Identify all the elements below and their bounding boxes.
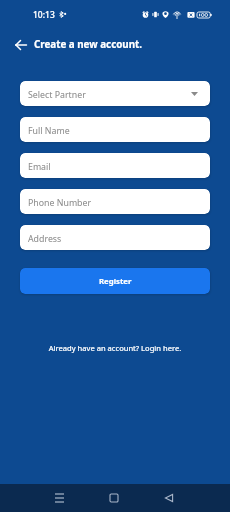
staticText: Select Partner bbox=[28, 89, 86, 101]
button[interactable]: Already have an account? Login here. bbox=[45, 341, 185, 354]
button[interactable]: Home bbox=[102, 486, 126, 510]
staticText: Register bbox=[99, 276, 132, 287]
button[interactable]: Email bbox=[20, 153, 210, 178]
staticText: Create a new account. bbox=[34, 38, 143, 51]
button[interactable]: Select Partner bbox=[20, 81, 210, 106]
staticText: Already have an account? Login here. bbox=[45, 343, 185, 353]
button[interactable]: Recent apps bbox=[47, 486, 71, 510]
button[interactable]: Back bbox=[157, 486, 181, 510]
button[interactable]: Full Name bbox=[20, 117, 210, 142]
button[interactable]: Back bbox=[10, 34, 32, 56]
button[interactable]: Register bbox=[20, 268, 210, 294]
staticText: 10:13 bbox=[33, 9, 55, 21]
button[interactable]: Phone Number bbox=[20, 189, 210, 214]
staticText: Phone Number bbox=[28, 197, 92, 209]
staticText: Address bbox=[28, 233, 62, 245]
button[interactable]: Address bbox=[20, 225, 210, 250]
staticText: Full Name bbox=[28, 125, 70, 137]
staticText: Email bbox=[28, 161, 51, 173]
